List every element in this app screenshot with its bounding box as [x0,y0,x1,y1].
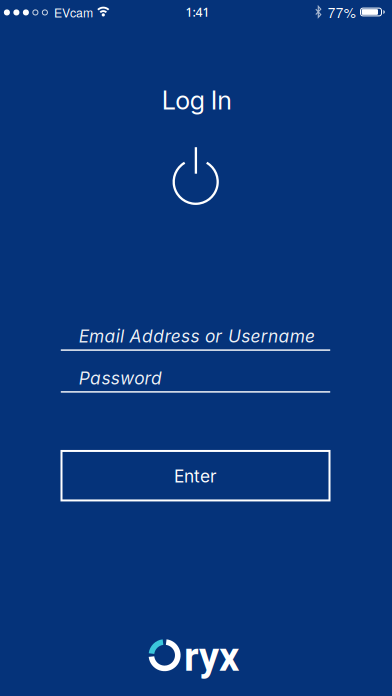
button[interactable]: Email Address or Username [61,320,330,351]
staticText: Email Address or Username [79,326,315,346]
staticText: 77% [328,2,356,22]
staticText: ryx [184,634,239,680]
staticText: 1:41 [185,4,209,20]
button[interactable]: Password [61,362,330,393]
staticText: Enter [174,466,217,486]
button[interactable]: Enter [60,450,330,501]
staticText: Password [79,368,162,388]
staticText: EVcam [54,3,93,21]
staticText: Log In [162,85,232,115]
